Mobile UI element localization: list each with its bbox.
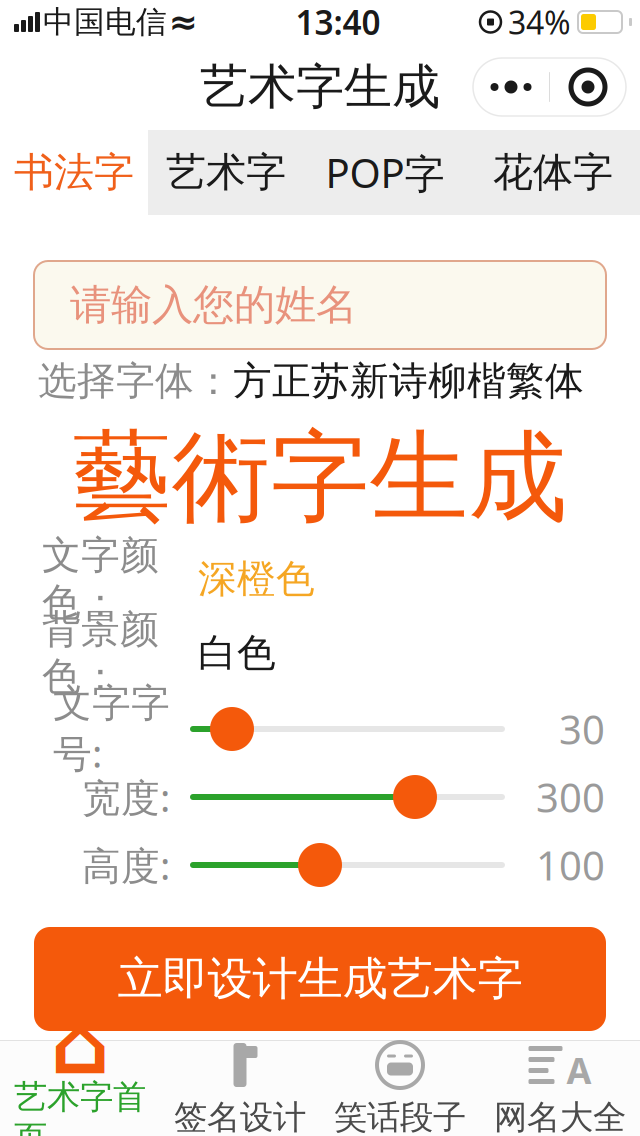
- button[interactable]: 选择字体：: [0, 349, 640, 413]
- button[interactable]: 背景颜色：: [0, 617, 640, 689]
- staticText: POP字: [325, 146, 444, 199]
- button[interactable]: 艺术字: [148, 130, 304, 215]
- staticText: 请输入您的姓名: [70, 280, 357, 330]
- staticText: 方正苏新诗柳楷繁体: [233, 357, 584, 405]
- staticText: 书法字: [14, 148, 134, 197]
- staticText: 选择字体：: [38, 357, 233, 405]
- button[interactable]: 笑话段子: [320, 1042, 480, 1134]
- button[interactable]: POP字: [304, 130, 466, 215]
- staticText: 30: [559, 702, 605, 755]
- staticText: 300: [536, 770, 605, 823]
- button[interactable]: 立即设计生成艺术字: [34, 927, 606, 1031]
- button[interactable]: 签名设计: [160, 1042, 320, 1134]
- staticText: 100: [536, 838, 605, 891]
- staticText: 高度:: [82, 839, 170, 891]
- staticText: 笑话段子: [334, 1097, 466, 1136]
- staticText: 艺术字生成: [200, 57, 440, 116]
- staticText: 34%: [508, 1, 571, 43]
- staticText: 白色: [198, 629, 276, 677]
- button[interactable]: Close Mini Program: [550, 58, 626, 116]
- staticText: 文字字号:: [53, 680, 170, 778]
- staticText: 文字颜色：: [42, 531, 159, 626]
- staticText: 宽度:: [82, 771, 170, 823]
- staticText: A: [566, 1046, 591, 1094]
- button[interactable]: 花体字: [466, 130, 640, 215]
- staticText: 深橙色: [198, 555, 315, 603]
- staticText: 艺术字: [166, 148, 286, 197]
- staticText: 网名大全: [494, 1097, 626, 1136]
- staticText: ≈: [168, 2, 197, 42]
- staticText: 中国电信: [43, 3, 167, 41]
- button[interactable]: More: [473, 58, 549, 116]
- staticText: 13:40: [295, 0, 380, 44]
- staticText: 艺术字首页: [14, 1077, 146, 1136]
- button[interactable]: ⌂: [0, 1042, 160, 1134]
- staticText: 藝術字生成: [72, 417, 567, 539]
- staticText: 签名设计: [174, 1097, 306, 1136]
- staticText: ⌂: [50, 998, 109, 1091]
- button[interactable]: 文字颜色：: [0, 543, 640, 615]
- staticText: 花体字: [493, 148, 613, 197]
- button[interactable]: A: [480, 1042, 640, 1134]
- staticText: 立即设计生成艺术字: [117, 951, 522, 1007]
- staticText: 背景颜色：: [42, 605, 159, 700]
- button[interactable]: 书法字: [0, 130, 148, 215]
